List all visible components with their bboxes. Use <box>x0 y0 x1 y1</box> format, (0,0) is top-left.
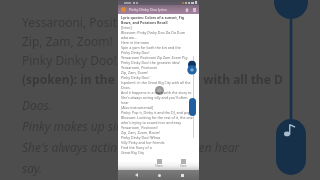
staticText: Bows, and Potatoes Recall <box>121 20 168 25</box>
staticText: hear <box>121 100 129 105</box>
staticText: Pinky: Pop it, Dinky it and the DJ, and … <box>121 110 193 115</box>
staticText: Zip, Zam, Zoom! <box>22 33 113 49</box>
staticText: She's always acting silly, you'll often … <box>22 139 240 155</box>
button[interactable]: Home <box>184 7 190 13</box>
staticText: (spoken): in the Great Big City with all… <box>22 71 283 87</box>
staticText: Doos. <box>121 85 131 90</box>
staticText: Zip, Zam, Zoom, Boom! <box>121 130 161 135</box>
staticText: Yessarooni Positooni Zip Zam Zoom Pig <box>121 55 188 60</box>
staticText: who's trying to sound nice and easy <box>121 120 182 125</box>
staticText: Pinky Dinky Doo! <box>121 75 150 80</box>
staticText: Here in the town <box>121 40 150 45</box>
button[interactable]: Home <box>154 170 164 180</box>
staticText: Yessarooni, Positooni! <box>121 125 158 130</box>
staticText: Yessarooni, Positooni <box>121 65 157 70</box>
staticText: Blossom: Pinky Dinky Doo Da Da Dum <box>121 30 186 35</box>
staticText: And it happens in a town with the story … <box>121 90 193 95</box>
staticText: Silly Pinky and her friends <box>121 140 165 145</box>
staticText: Blossom: Looking for the rest of it, the… <box>121 115 193 120</box>
staticText: Pinky Dinky Doo lyrics <box>129 7 167 12</box>
button[interactable]: Save <box>180 159 187 170</box>
button[interactable]: Scroll to top <box>186 60 198 76</box>
staticText: Zip, Zam, Zoom! <box>121 70 149 75</box>
staticText: Yessarooni, Positooni <box>22 14 143 30</box>
staticText: Pinky Dinky Doo! <box>121 50 150 55</box>
staticText: Lyric quotes: Colors of a sunset, Fig Sh… <box>121 15 193 20</box>
button[interactable]: Recents <box>177 170 187 180</box>
staticText: Pinky Dinky Doo! Whoa <box>121 135 161 140</box>
button[interactable]: Back <box>131 170 141 180</box>
button[interactable]: Scroll <box>189 98 196 116</box>
staticText: [Intro] <box>121 25 132 30</box>
staticText: Great Big City <box>121 150 145 155</box>
staticText: Pinky makes up silly words, too <box>22 118 187 134</box>
staticText: Pinky Dinky Doo! <box>22 52 117 68</box>
button[interactable]: Share <box>155 159 164 170</box>
staticText: say. <box>22 160 43 176</box>
staticText: Save <box>180 164 187 168</box>
staticText: (spoken): in the Great Big City with all… <box>121 80 191 85</box>
staticText: [Also instrumental] <box>121 105 154 110</box>
staticText: Pinky Dinky Doo! the greatest idea! <box>121 60 180 65</box>
staticText: Share <box>155 164 164 168</box>
button[interactable]: Bookmarks <box>191 7 197 13</box>
staticText: Find the Story of a <box>121 145 152 150</box>
staticText: Spin a yarn for both the kin and the wor… <box>121 45 193 50</box>
staticText: She's always acting silly and you'll oft… <box>121 95 188 100</box>
staticText: Doos. <box>22 97 52 113</box>
button[interactable]: Pinky Dinky Doo lyrics <box>118 5 199 14</box>
staticText: wha wa... <box>121 35 137 40</box>
